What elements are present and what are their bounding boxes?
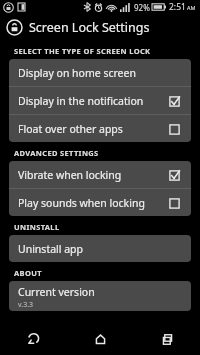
button[interactable]: Checked <box>165 166 183 184</box>
staticText: SELECT THE TYPE OF SCREEN LOCK <box>14 46 151 56</box>
staticText: AM <box>187 4 196 11</box>
staticText: Float over other apps <box>18 122 123 136</box>
staticText: ADVANCED SETTINGS <box>14 148 99 158</box>
button[interactable]: Recent apps <box>150 323 184 355</box>
staticText: Vibrate when locking <box>18 168 122 182</box>
staticText: Uninstall app <box>18 242 84 256</box>
button[interactable]: Uninstall app <box>9 235 191 262</box>
staticText: ABOUT <box>14 268 42 278</box>
staticText: v.3.3 <box>18 300 34 310</box>
button[interactable]: Play sounds when locking <box>9 189 191 216</box>
staticText: Screen Lock Settings <box>29 19 150 36</box>
button[interactable]: Vibrate when locking <box>9 161 191 188</box>
button[interactable]: Current version <box>9 281 191 311</box>
staticText: 92% <box>134 2 150 13</box>
staticText: Play sounds when locking <box>18 196 145 210</box>
button[interactable]: Float over other apps <box>9 115 191 142</box>
button[interactable]: Display in the notification <box>9 87 191 114</box>
staticText: Current version <box>18 285 95 299</box>
staticText: 2:51 <box>169 1 186 13</box>
staticText: UNINSTALL <box>14 222 60 232</box>
button[interactable]: Display on home screen <box>9 59 191 86</box>
button[interactable]: Checked <box>165 92 183 110</box>
staticText: Display on home screen <box>18 66 136 80</box>
button[interactable]: Back <box>16 323 50 355</box>
staticText: Display in the notification <box>18 94 144 108</box>
button[interactable]: Unchecked <box>165 194 183 212</box>
button[interactable]: Unchecked <box>165 120 183 138</box>
button[interactable]: Home <box>83 323 117 355</box>
